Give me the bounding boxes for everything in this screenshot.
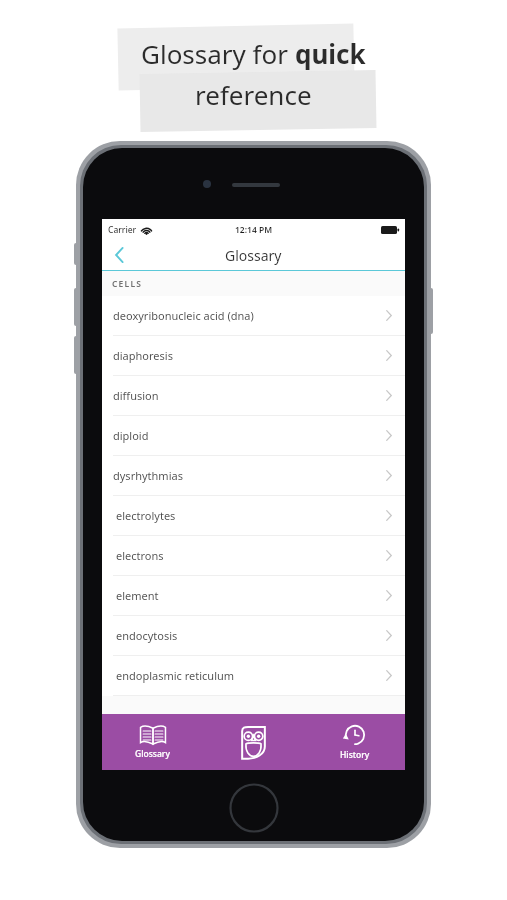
button[interactable]: Owl home (203, 714, 304, 770)
button[interactable]: endocytosis (102, 616, 405, 656)
button[interactable]: diploid (102, 416, 405, 456)
button[interactable]: diffusion (102, 376, 405, 416)
staticText: 12:14 PM (235, 224, 273, 236)
staticText: deoxyribonucleic acid (dna) (113, 308, 254, 323)
button[interactable]: electrolytes (102, 496, 405, 536)
staticText: diffusion (113, 388, 159, 403)
staticText: endocytosis (116, 628, 178, 643)
button[interactable]: Glossary (102, 714, 203, 770)
staticText: diaphoresis (113, 348, 173, 363)
staticText: quick (295, 36, 366, 71)
staticText: Glossary (135, 748, 170, 760)
button[interactable]: endoplasmic reticulum (102, 656, 405, 696)
staticText: CELLS (112, 278, 143, 290)
staticText: dysrhythmias (113, 468, 183, 483)
button[interactable]: deoxyribonucleic acid (dna) (102, 296, 405, 336)
button[interactable]: History (304, 714, 405, 770)
staticText: reference (195, 77, 312, 112)
button[interactable]: diaphoresis (102, 336, 405, 376)
staticText: Glossary for (141, 36, 295, 71)
staticText: Glossary (225, 246, 282, 265)
button[interactable]: electrons (102, 536, 405, 576)
staticText: History (340, 749, 370, 761)
staticText: endoplasmic reticulum (116, 668, 235, 683)
staticText: diploid (113, 428, 149, 443)
button[interactable]: element (102, 576, 405, 616)
button[interactable]: Back (102, 240, 136, 270)
staticText: element (116, 588, 159, 603)
staticText: electrons (116, 548, 164, 563)
staticText: electrolytes (116, 508, 176, 523)
staticText: Carrier (108, 224, 137, 236)
button[interactable]: dysrhythmias (102, 456, 405, 496)
